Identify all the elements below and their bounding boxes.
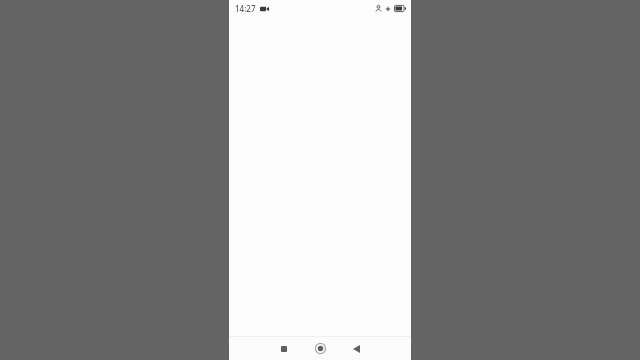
- staticText: 14:27: [235, 3, 256, 14]
- button[interactable]: Back: [338, 337, 374, 360]
- button[interactable]: Home: [302, 337, 338, 360]
- button[interactable]: Recent apps: [266, 337, 302, 360]
